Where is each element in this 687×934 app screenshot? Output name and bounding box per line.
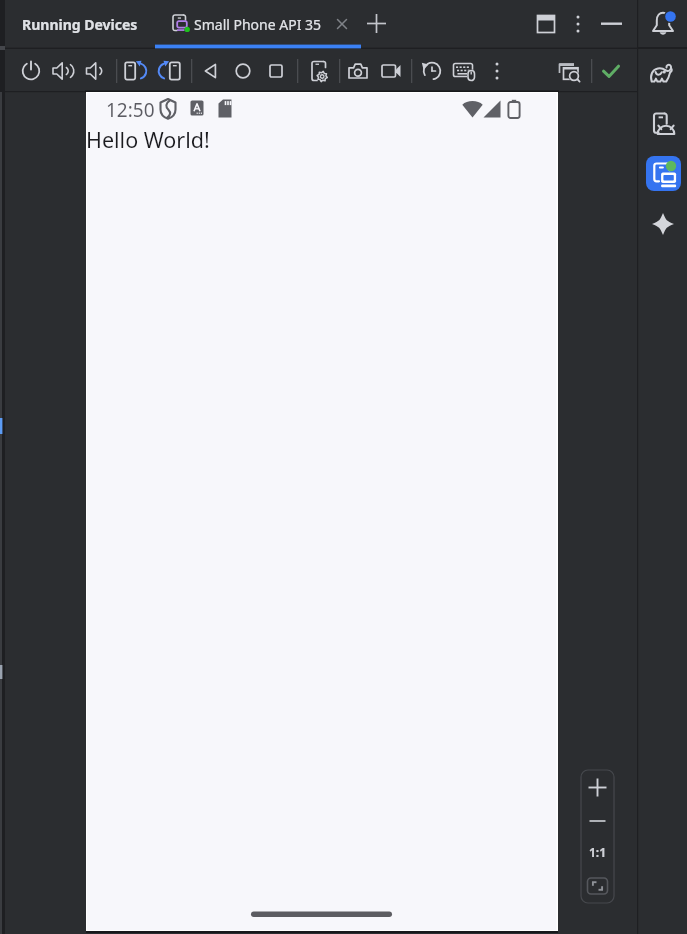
button[interactable]: Display mode: [556, 58, 582, 84]
button[interactable]: Confirm: [598, 58, 624, 84]
staticText: Hello World!: [86, 125, 210, 154]
button[interactable]: Overview: [263, 58, 289, 84]
button[interactable]: Add device: [364, 12, 390, 36]
button[interactable]: Volume up: [49, 58, 75, 84]
button[interactable]: More options: [568, 12, 590, 36]
button[interactable]: Minimize: [600, 12, 624, 36]
button[interactable]: Volume down: [81, 58, 107, 84]
staticText: 1:1: [589, 844, 607, 860]
button[interactable]: Window options: [534, 12, 560, 36]
button[interactable]: Notifications: [648, 8, 680, 40]
button[interactable]: 1:1: [582, 838, 613, 866]
staticText: Running Devices: [22, 15, 138, 34]
button[interactable]: Record screen: [378, 58, 404, 84]
button[interactable]: Rotate left: [123, 58, 149, 84]
button[interactable]: Device Manager: [648, 108, 680, 140]
button[interactable]: Device settings: [306, 58, 332, 84]
button[interactable]: Running Devices: [14, 8, 146, 40]
staticText: Small Phone API 35: [194, 15, 322, 34]
button[interactable]: Screenshot: [345, 58, 371, 84]
button[interactable]: Zoom out: [582, 806, 613, 836]
button[interactable]: Running Devices: [646, 156, 682, 192]
button[interactable]: Gemini: [648, 208, 680, 240]
button[interactable]: More: [484, 58, 510, 84]
button[interactable]: Small Phone API 35: [160, 8, 330, 40]
button[interactable]: Gradle: [648, 58, 680, 90]
button[interactable]: Hardware input: [451, 58, 477, 84]
button[interactable]: Undo: [419, 58, 445, 84]
button[interactable]: Close tab: [334, 14, 352, 34]
button[interactable]: Zoom to fit: [582, 870, 613, 900]
button[interactable]: Zoom in: [582, 772, 613, 804]
button[interactable]: Home: [230, 58, 256, 84]
button[interactable]: Power: [18, 58, 44, 84]
staticText: 12:50: [106, 97, 155, 123]
button[interactable]: Back: [198, 58, 224, 84]
button[interactable]: Rotate right: [156, 58, 182, 84]
